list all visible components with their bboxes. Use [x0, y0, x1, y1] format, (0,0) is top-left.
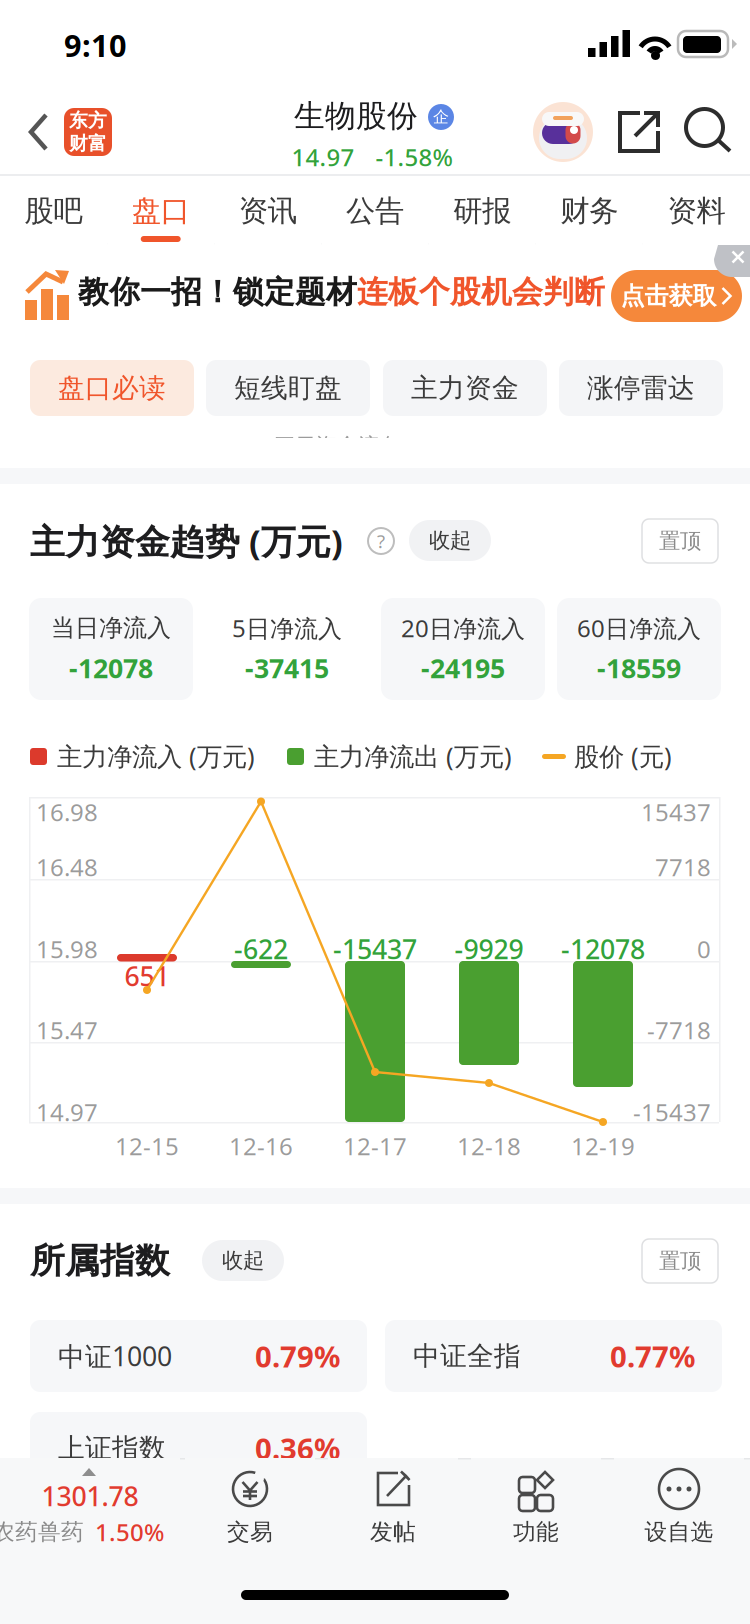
staticText: 生物股份 — [294, 97, 418, 135]
staticText: 东方 — [69, 109, 107, 132]
staticText: 14.97 — [36, 1096, 98, 1128]
staticText: 0.36% — [255, 1428, 340, 1467]
staticText: 14.97 — [291, 141, 354, 173]
staticText: 置顶 — [659, 1248, 701, 1274]
button[interactable]: 收起 — [409, 520, 491, 561]
button[interactable]: 资讯 — [214, 176, 321, 245]
staticText: -15437 — [633, 1096, 711, 1128]
button[interactable]: 设自选 — [614, 1458, 744, 1568]
button[interactable]: 收起 — [202, 1240, 284, 1281]
staticText: 农药兽药 — [0, 1518, 84, 1546]
staticText: ? — [377, 529, 385, 553]
staticText: 交易 — [227, 1518, 273, 1546]
staticText: 财富 — [69, 132, 107, 155]
staticText: 12-18 — [457, 1130, 521, 1162]
staticText: 短线盯盘 — [234, 372, 342, 404]
staticText: 资料 — [667, 193, 725, 229]
button[interactable]: 短线盯盘 — [206, 360, 370, 416]
staticText: 主力净流入 (万元) — [57, 739, 255, 773]
button[interactable]: 点击获取 — [611, 270, 742, 322]
button[interactable]: AI 助手 — [533, 102, 593, 162]
button[interactable]: 1301.78 — [0, 1458, 180, 1568]
staticText: 0.77% — [610, 1336, 695, 1375]
staticText: 收起 — [222, 1247, 264, 1274]
button[interactable]: 中证1000 — [30, 1320, 367, 1392]
button[interactable]: 公告 — [321, 176, 428, 245]
button[interactable]: 交易 — [185, 1458, 315, 1568]
staticText: 16.48 — [36, 851, 98, 883]
button[interactable]: 主力资金 — [383, 360, 547, 416]
button[interactable]: 研报 — [429, 176, 536, 245]
staticText: 12-15 — [115, 1130, 179, 1162]
staticText: 15.47 — [36, 1014, 98, 1046]
button[interactable]: 盘口必读 — [30, 360, 194, 416]
staticText: -12078 — [561, 931, 645, 967]
staticText: 主力资金趋势 (万元) — [30, 518, 343, 564]
button[interactable]: Back — [12, 97, 66, 167]
button[interactable]: 上证指数 — [30, 1412, 367, 1484]
staticText: -622 — [234, 931, 288, 967]
staticText: 所属指数 — [30, 1240, 170, 1282]
button[interactable]: 置顶 — [642, 1239, 718, 1283]
staticText: 锁定题材 — [233, 273, 357, 311]
staticText: 三日资金流向 — [274, 433, 400, 459]
staticText: 教你一招！ — [78, 273, 233, 311]
staticText: -1.58% — [375, 141, 452, 173]
button[interactable]: 中证全指 — [385, 1320, 722, 1392]
staticText: -18559 — [597, 650, 681, 686]
staticText: 资讯 — [239, 193, 297, 229]
button[interactable]: 当日净流入 — [29, 598, 193, 700]
staticText: 公告 — [346, 193, 404, 229]
staticText: 12-16 — [229, 1130, 293, 1162]
staticText: 15437 — [641, 796, 711, 828]
button[interactable]: 东方财富 — [64, 108, 112, 156]
staticText: 连板个股机会判断 — [357, 273, 605, 311]
staticText: -9929 — [454, 931, 523, 967]
staticText: 财务 — [560, 193, 618, 229]
button[interactable]: 涨停雷达 — [559, 360, 723, 416]
button[interactable]: 财务 — [536, 176, 643, 245]
staticText: 设自选 — [644, 1518, 713, 1546]
button[interactable]: 资料 — [643, 176, 750, 245]
staticText: 16.98 — [36, 796, 98, 828]
staticText: 15.98 — [36, 933, 98, 965]
button[interactable]: 股吧 — [0, 176, 107, 245]
button[interactable]: 发帖 — [328, 1458, 458, 1568]
staticText: 7718 — [655, 851, 711, 883]
staticText: -15437 — [333, 931, 417, 967]
button[interactable]: 盘口 — [107, 176, 214, 245]
staticText: 功能 — [513, 1518, 559, 1546]
staticText: 股吧 — [25, 193, 83, 229]
staticText: 中证全指 — [413, 1340, 521, 1372]
staticText: 9:10 — [64, 25, 127, 65]
button[interactable]: Search — [672, 95, 746, 169]
staticText: 12-19 — [571, 1130, 635, 1162]
staticText: 盘口 — [132, 193, 190, 229]
staticText: 0 — [697, 933, 711, 965]
staticText: 主力净流出 (万元) — [314, 739, 512, 773]
button[interactable]: 5日净流入 — [205, 598, 369, 700]
button[interactable]: 20日净流入 — [381, 598, 545, 700]
staticText: 1301.78 — [41, 1478, 138, 1514]
staticText: 置顶 — [659, 528, 701, 554]
button[interactable]: 60日净流入 — [557, 598, 721, 700]
staticText: 主力资金 — [411, 372, 519, 404]
staticText: 发帖 — [370, 1518, 416, 1546]
staticText: -12078 — [69, 650, 153, 686]
staticText: 企 — [433, 107, 449, 127]
staticText: 研报 — [453, 193, 511, 229]
staticText: -7718 — [647, 1014, 711, 1046]
staticText: -24195 — [421, 650, 505, 686]
staticText: 12-17 — [343, 1130, 407, 1162]
staticText: 股价 (元) — [574, 739, 672, 773]
staticText: 651 — [124, 958, 169, 994]
staticText: 收起 — [429, 527, 471, 554]
button[interactable]: 功能 — [471, 1458, 601, 1568]
staticText: 点击获取 — [620, 281, 716, 311]
button[interactable]: 置顶 — [642, 519, 718, 563]
staticText: 20日净流入 — [401, 612, 525, 644]
button[interactable]: 关闭 — [718, 245, 750, 277]
staticText: 60日净流入 — [577, 612, 701, 644]
staticText: 5日净流入 — [232, 612, 342, 644]
button[interactable]: Share — [602, 95, 676, 169]
